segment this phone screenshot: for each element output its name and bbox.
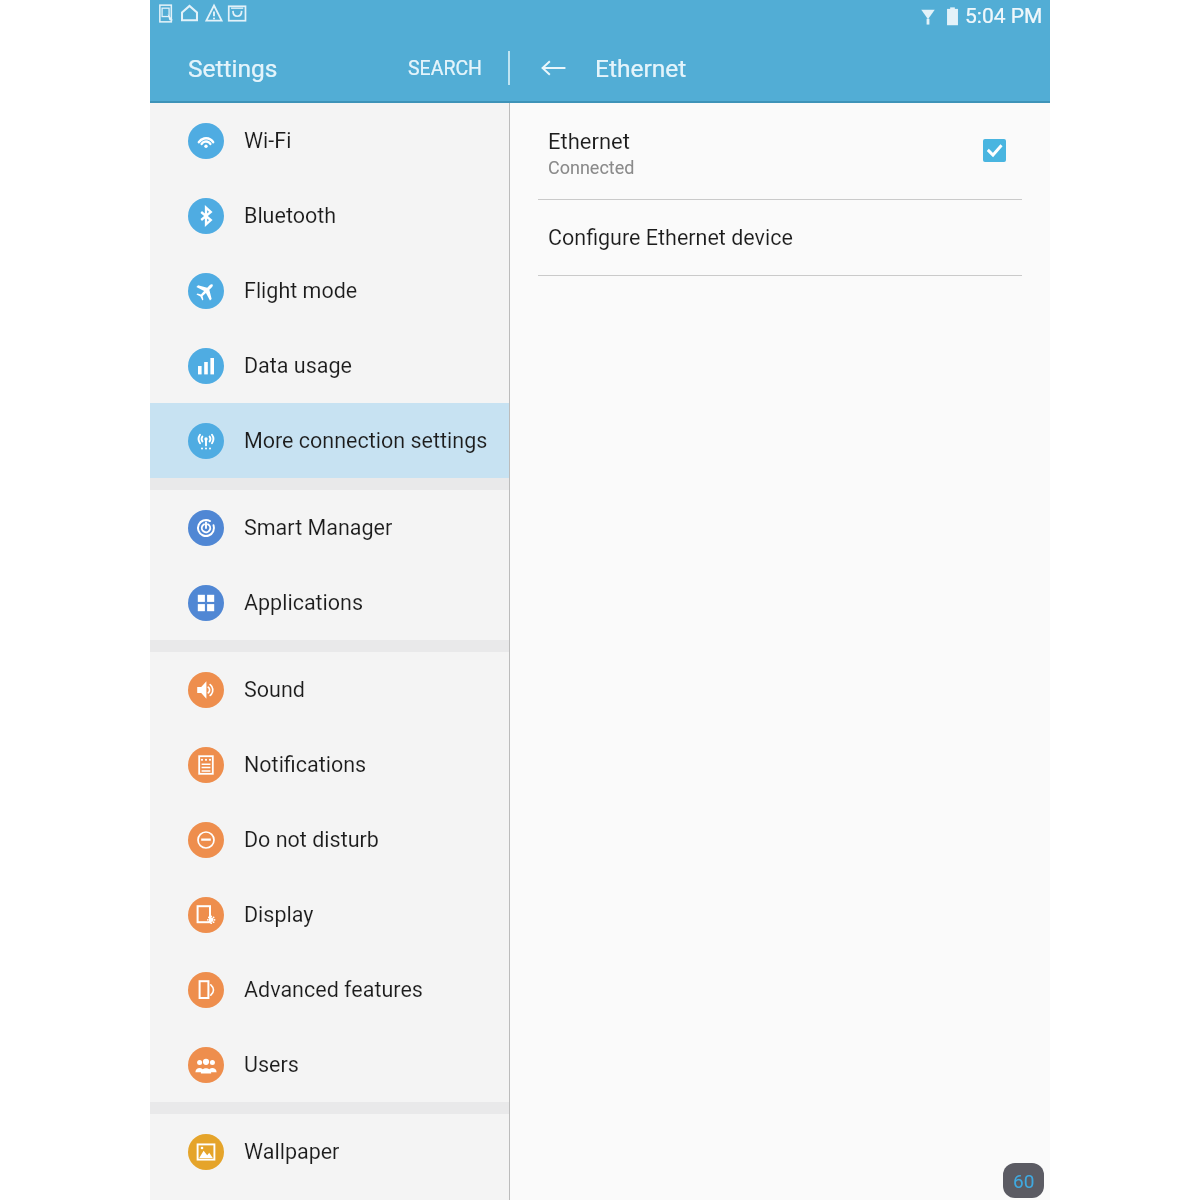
button[interactable]: Wi-Fi [150,103,509,178]
staticText: SEARCH [408,57,483,80]
staticText: More connection settings [244,428,488,453]
button[interactable]: Bluetooth [150,178,509,253]
staticText: Display [244,902,314,927]
button[interactable]: Wallpaper [150,1114,509,1189]
staticText: Wallpaper [244,1139,340,1164]
button[interactable]: Back [530,44,578,92]
staticText: Ethernet [595,54,687,83]
staticText: 5:04 PM [965,4,1043,29]
button[interactable]: Ethernet [510,103,1050,199]
staticText: Sound [244,677,305,702]
staticText: Ethernet [548,129,630,155]
button[interactable]: Ethernet enabled [983,139,1006,162]
staticText: Advanced features [244,977,423,1002]
staticText: Applications [244,590,364,615]
staticText: 60 [1013,1170,1035,1192]
button[interactable]: Configure Ethernet device [510,200,1050,275]
staticText: Wi-Fi [244,128,292,153]
staticText: Notifications [244,752,367,777]
button[interactable]: SEARCH [390,45,501,92]
staticText: Bluetooth [244,203,337,228]
staticText: Settings [188,54,278,83]
staticText: Data usage [244,353,352,378]
button[interactable]: Smart Manager [150,490,509,565]
button[interactable]: Notifications [150,727,509,802]
staticText: Users [244,1052,299,1077]
button[interactable]: Advanced features [150,952,509,1027]
button[interactable]: Do not disturb [150,802,509,877]
staticText: Do not disturb [244,827,379,852]
staticText: Smart Manager [244,515,393,540]
staticText: Flight mode [244,278,358,303]
button[interactable]: More connection settings [150,403,509,478]
button[interactable]: Flight mode [150,253,509,328]
staticText: Connected [548,157,635,178]
button[interactable]: Users [150,1027,509,1102]
button[interactable]: Sound [150,652,509,727]
button[interactable]: Applications [150,565,509,640]
button[interactable]: Data usage [150,328,509,403]
button[interactable]: Display [150,877,509,952]
staticText: Configure Ethernet device [548,225,793,250]
